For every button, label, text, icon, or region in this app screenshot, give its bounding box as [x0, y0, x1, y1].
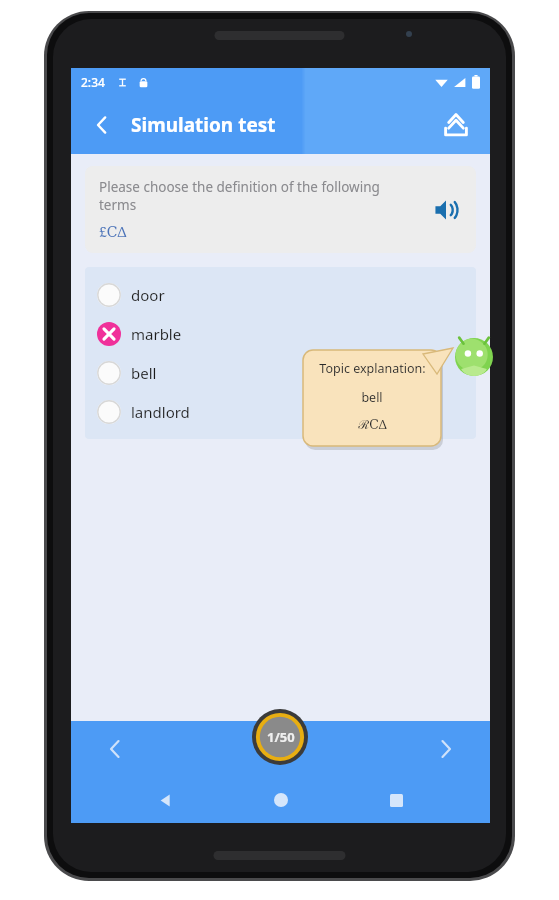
button[interactable]: landlord [85, 392, 476, 431]
button[interactable]: door [85, 275, 476, 314]
button[interactable]: Upload [434, 103, 478, 147]
button[interactable]: Please choose the definition of the foll… [85, 166, 476, 253]
staticText: landlord [131, 402, 190, 422]
staticText: Simulation test [131, 112, 276, 138]
staticText: ℛⅭΔ [358, 416, 387, 433]
staticText: Please choose the definition of the foll… [99, 178, 418, 214]
staticText: Topic explanation: [319, 360, 426, 377]
button[interactable]: Previous question [93, 727, 137, 771]
button[interactable]: Next question [424, 727, 468, 771]
staticText: door [131, 285, 165, 305]
button[interactable]: marble [85, 314, 476, 353]
staticText: bell [361, 389, 383, 406]
button[interactable]: Play audio [426, 190, 466, 230]
button[interactable]: Home [259, 778, 303, 822]
staticText: 1/50 [267, 728, 295, 746]
button[interactable]: Back [81, 104, 123, 146]
button[interactable]: bell [85, 353, 476, 392]
staticText: marble [131, 324, 182, 344]
staticText: 2:34 [81, 74, 105, 90]
button[interactable]: Assistant [455, 338, 493, 376]
button[interactable]: Recent apps [374, 778, 418, 822]
button[interactable]: Question 1 of 50 [252, 709, 310, 765]
staticText: £ⅭΔ [99, 222, 127, 241]
staticText: bell [131, 363, 157, 383]
button[interactable]: Back [143, 778, 187, 822]
